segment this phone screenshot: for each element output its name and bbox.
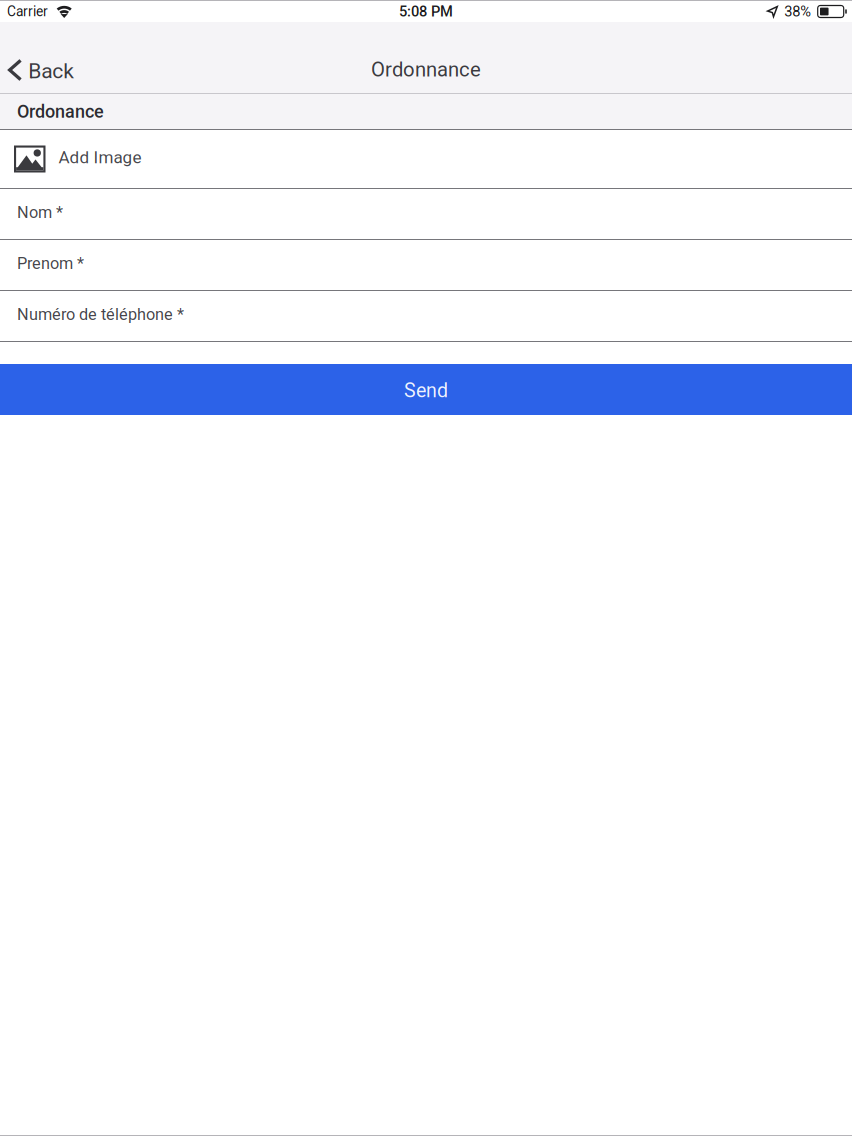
staticText: Nom * — [17, 203, 63, 222]
staticText: Numéro de téléphone * — [17, 305, 184, 324]
button[interactable]: Numéro de téléphone * — [0, 291, 852, 341]
button[interactable]: Prenom * — [0, 240, 852, 290]
staticText: Carrier — [7, 3, 48, 20]
staticText: Back — [28, 59, 74, 83]
button[interactable]: Nom * — [0, 189, 852, 239]
button[interactable]: Add Image — [0, 130, 852, 188]
staticText: Prenom * — [17, 254, 84, 273]
staticText: Add Image — [58, 147, 141, 167]
staticText: 5:08 PM — [399, 3, 453, 20]
button[interactable]: Back — [0, 49, 86, 93]
staticText: 38% — [784, 3, 811, 20]
button[interactable]: Send — [0, 364, 852, 415]
staticText: Ordonnance — [371, 58, 481, 81]
staticText: Send — [404, 379, 448, 402]
staticText: Ordonance — [17, 101, 104, 122]
